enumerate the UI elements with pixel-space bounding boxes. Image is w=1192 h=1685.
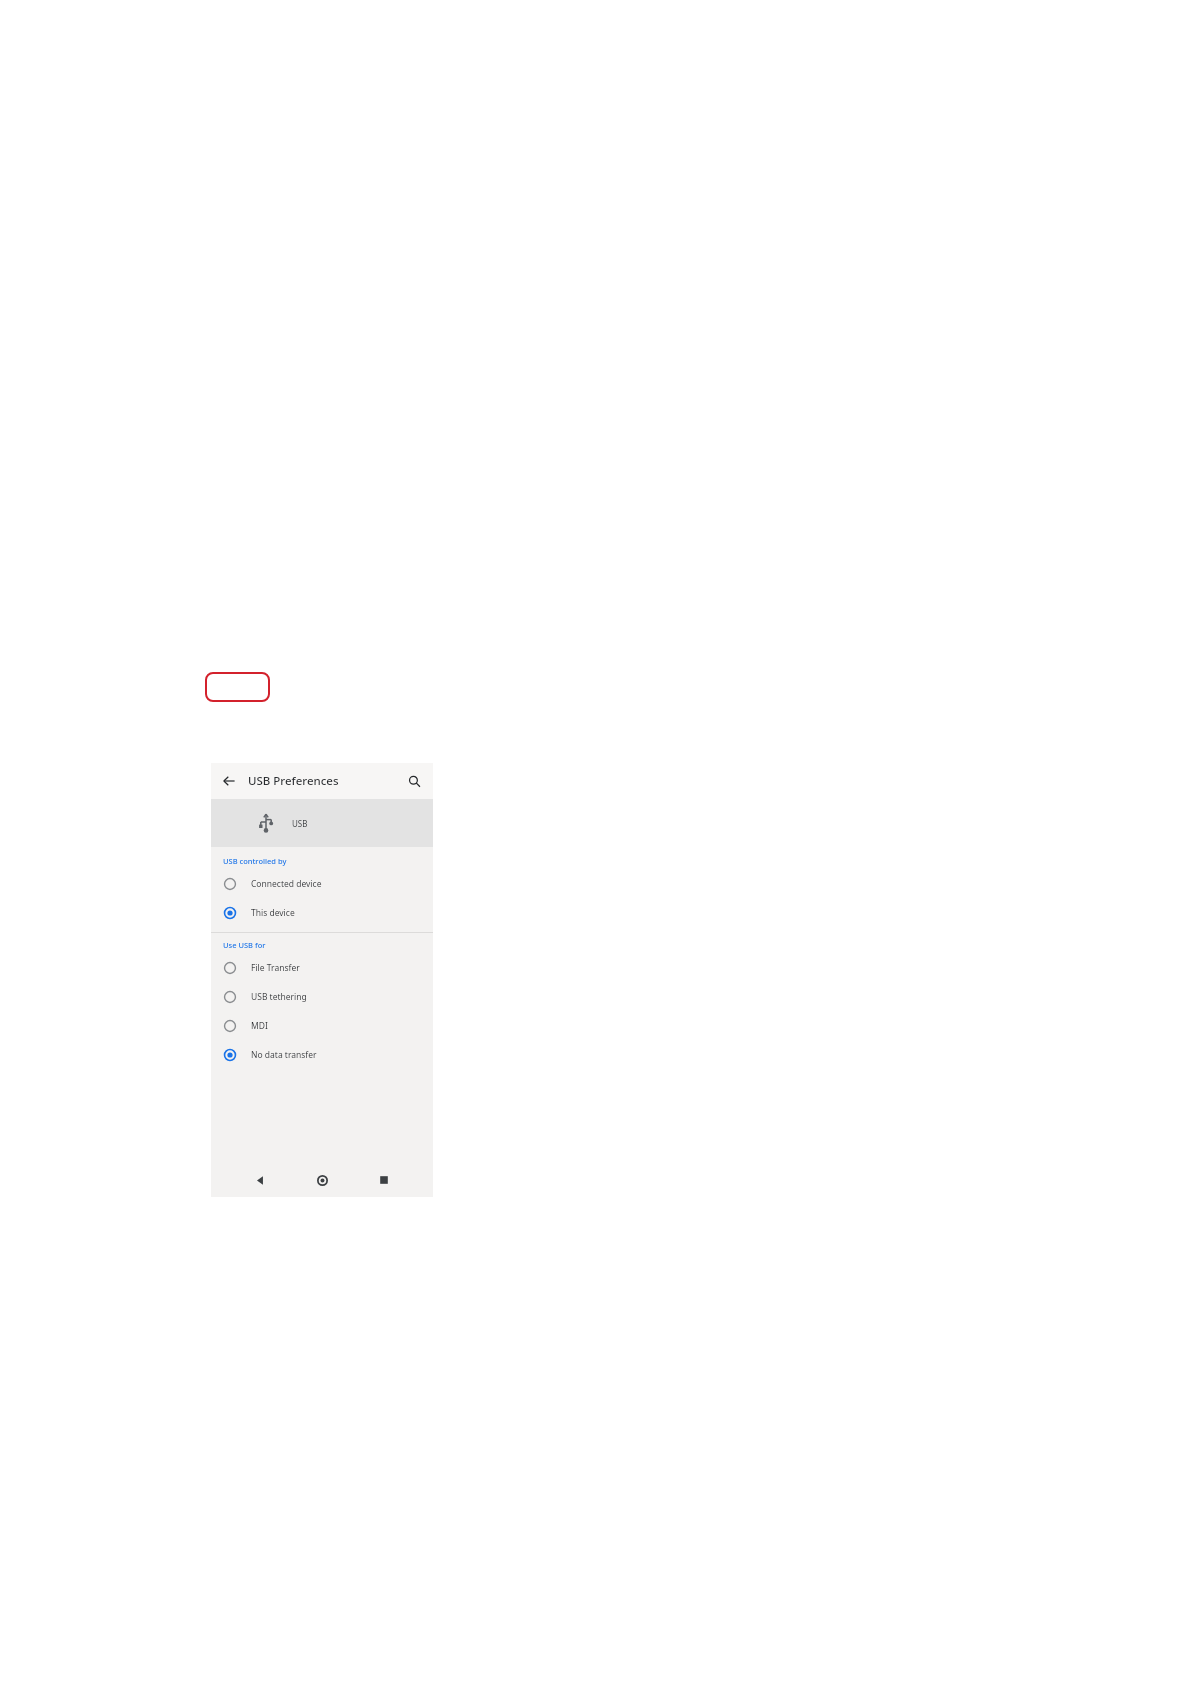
staticText: This device (251, 907, 295, 919)
button[interactable]: No data transfer (211, 1040, 433, 1069)
staticText: Use USB for (223, 940, 266, 950)
button[interactable]: Connected device (211, 869, 433, 898)
staticText: MDI (251, 1020, 268, 1032)
button[interactable]: Back (247, 1167, 273, 1193)
button[interactable]: This device (211, 898, 433, 927)
button[interactable]: USB tethering (211, 982, 433, 1011)
staticText: USB (292, 818, 308, 829)
staticText: No data transfer (251, 1049, 317, 1061)
button[interactable]: Recent apps (371, 1167, 397, 1193)
staticText: File Transfer (251, 962, 300, 974)
button[interactable]: File Transfer (211, 953, 433, 982)
staticText: USB Preferences (248, 773, 339, 789)
button[interactable]: Back (218, 770, 240, 792)
staticText: Connected device (251, 878, 322, 890)
button[interactable]: Home (309, 1167, 335, 1193)
staticText: USB tethering (251, 991, 307, 1003)
button[interactable]: Search (403, 770, 425, 792)
button[interactable]: MDI (211, 1011, 433, 1040)
staticText: USB controlled by (223, 856, 287, 866)
button[interactable]: USB (211, 799, 433, 847)
